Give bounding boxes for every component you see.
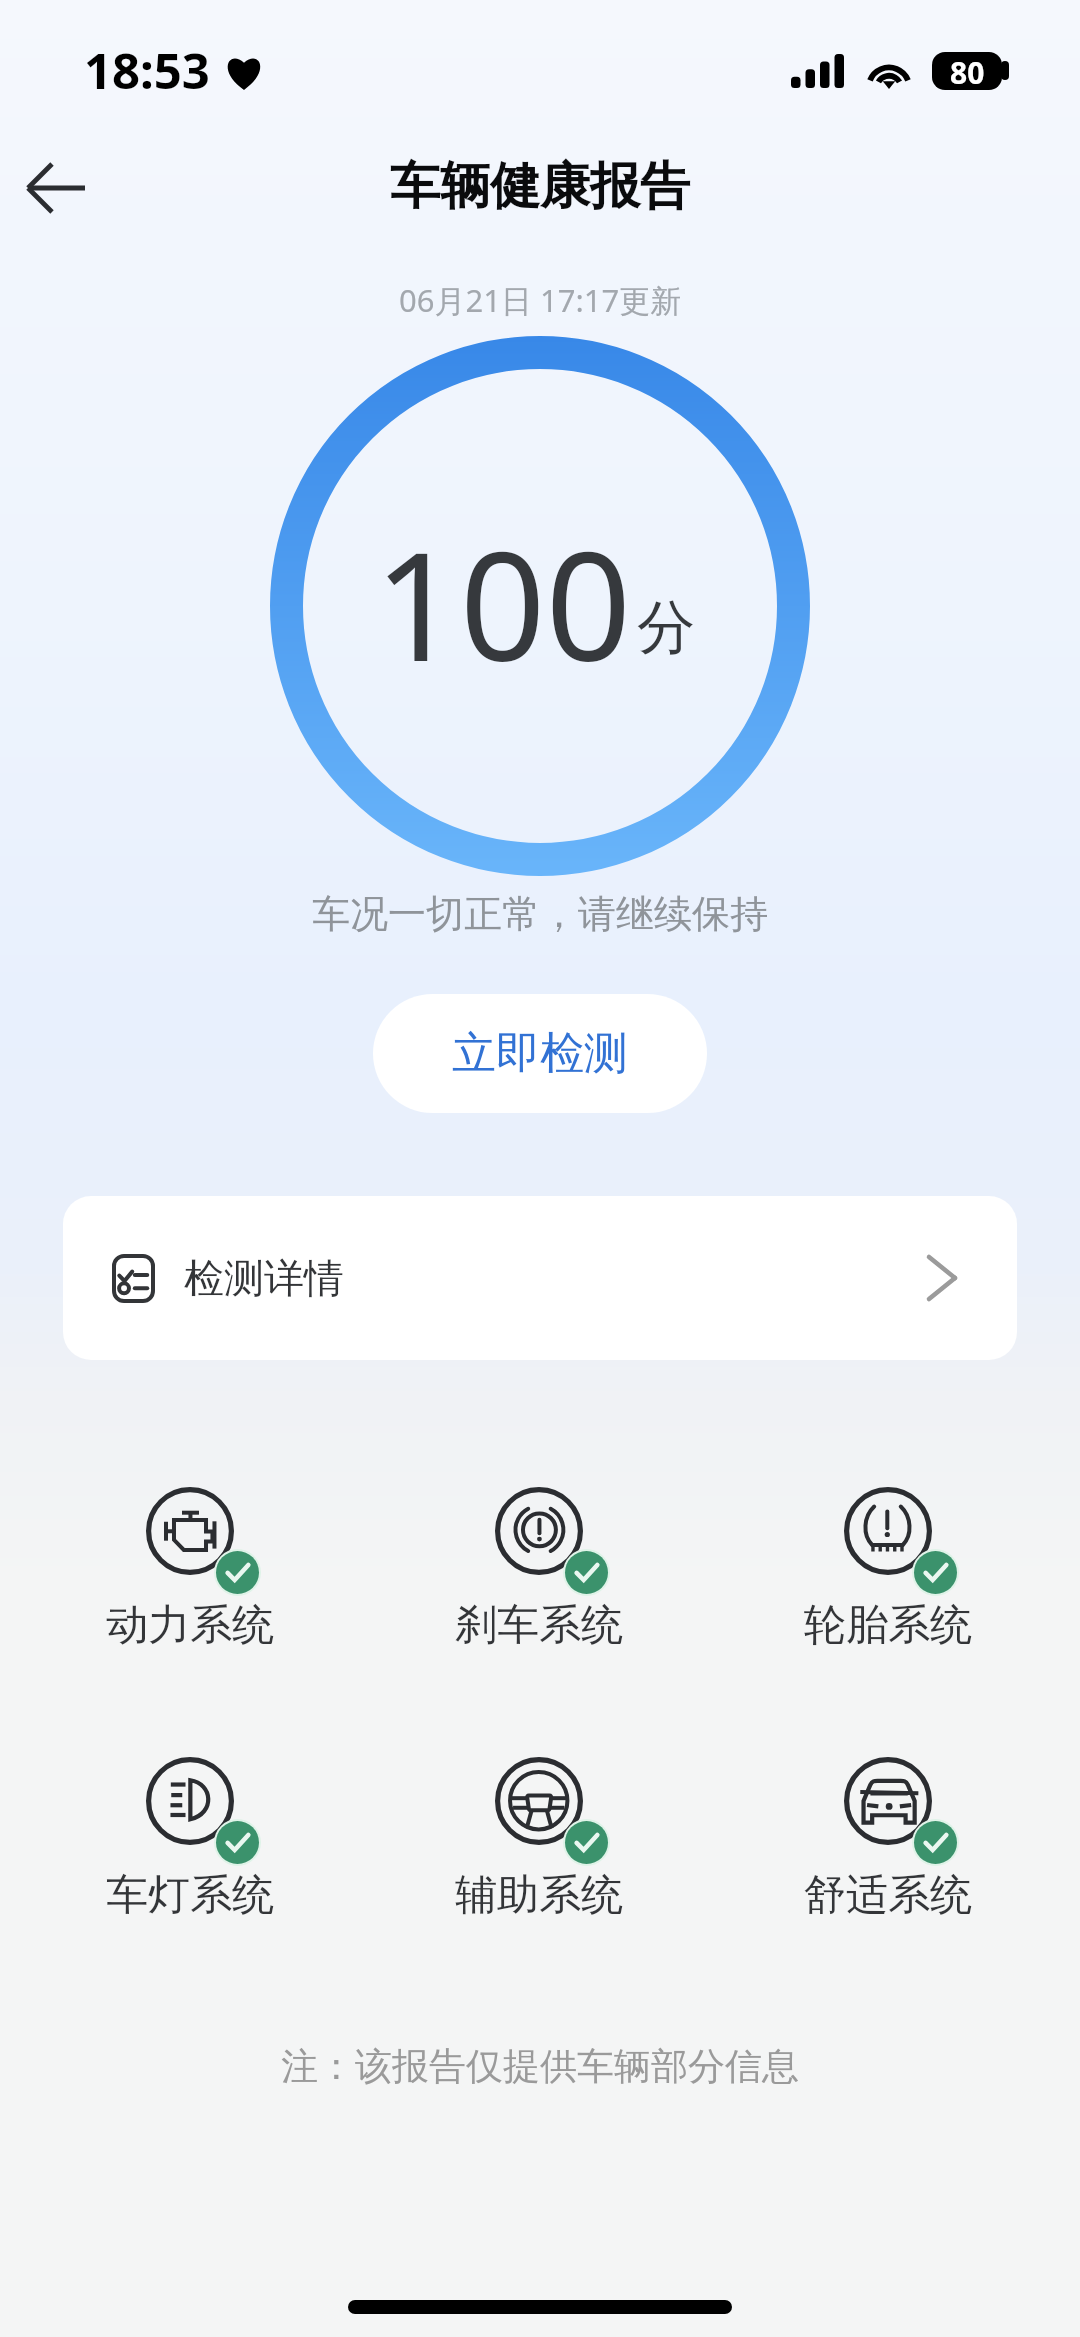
button[interactable]: 立即检测 [373,994,707,1113]
button[interactable]: Back [4,136,116,240]
staticText: 06月21日 17:17更新 [399,279,682,321]
staticText: 动力系统 [106,1599,274,1652]
button[interactable] [70,1475,310,1647]
button[interactable] [70,1745,310,1917]
staticText: 辅助系统 [455,1869,623,1922]
button[interactable] [419,1745,659,1917]
staticText: 80 [950,52,985,90]
button[interactable] [768,1745,1008,1917]
staticText: 立即检测 [452,1026,628,1081]
staticText: 车灯系统 [106,1869,274,1922]
staticText: 刹车系统 [455,1599,623,1652]
staticText: 车辆健康报告 [390,155,690,218]
staticText: 检测详情 [184,1253,344,1303]
staticText: 车况一切正常，请继续保持 [312,890,768,938]
staticText: 注：该报告仅提供车辆部分信息 [281,2043,799,2090]
staticText: 100 [374,501,632,705]
button[interactable]: 检测详情 [63,1196,1017,1360]
staticText: 18:53 [84,37,210,104]
staticText: 分 [637,591,695,664]
button[interactable] [419,1475,659,1647]
staticText: 舒适系统 [804,1869,972,1922]
button[interactable] [768,1475,1008,1647]
staticText: 轮胎系统 [804,1599,972,1652]
